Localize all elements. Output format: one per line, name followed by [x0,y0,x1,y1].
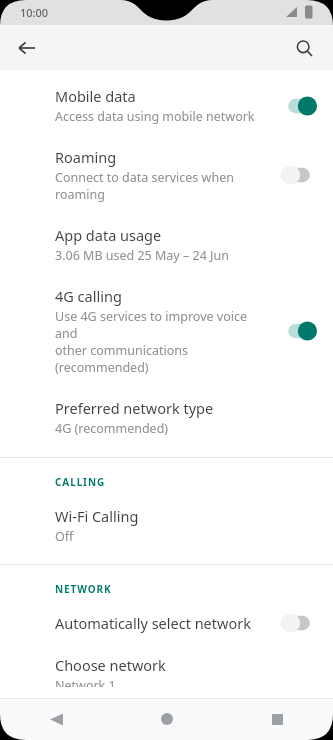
button[interactable] [281,321,317,341]
button[interactable]: App data usage [0,214,333,275]
staticText: Connect to data services when roaming [55,169,271,203]
button[interactable]: Roaming [0,136,333,214]
staticText: Access data using mobile network [55,108,255,125]
staticText: 4G (recommended) [55,420,169,437]
button[interactable]: Recents [255,698,299,740]
staticText: 4G calling [55,286,122,306]
staticText: App data usage [55,225,162,245]
button[interactable]: Wi-Fi Calling [0,495,333,556]
button[interactable]: Back [6,27,48,69]
staticText: Wi-Fi Calling [55,506,139,526]
button[interactable]: Search [283,27,325,69]
button[interactable]: Choose network [0,644,333,698]
staticText: Choose network [55,655,166,675]
button[interactable]: Back [34,698,78,740]
button[interactable]: Preferred network type [0,387,333,448]
button[interactable]: 4G calling [0,275,333,387]
staticText: Off [55,528,74,545]
button[interactable]: Automatically select network [0,602,333,644]
staticText: 3.06 MB used 25 May – 24 Jun [55,247,229,264]
staticText: Preferred network type [55,398,214,418]
staticText: Use 4G services to improve voice and oth… [55,308,271,376]
staticText: CALLING [55,475,106,489]
staticText: Automatically select network [55,613,251,633]
staticText: Roaming [55,147,117,167]
staticText: Mobile data [55,86,136,106]
button[interactable] [281,96,317,116]
staticText: Network 1 [55,677,116,687]
button[interactable] [281,613,317,633]
button[interactable]: Home [145,698,189,740]
button[interactable]: Mobile data [0,75,333,136]
button[interactable] [281,165,317,185]
staticText: 10:00 [20,5,49,20]
staticText: NETWORK [55,582,112,596]
